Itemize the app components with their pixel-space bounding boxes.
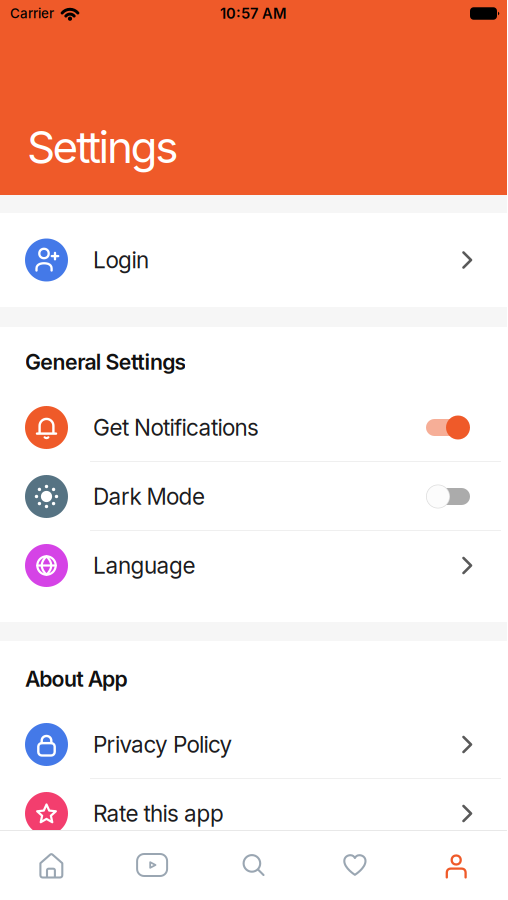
button[interactable]: Videos <box>101 851 203 879</box>
staticText: General Settings <box>25 349 186 375</box>
button[interactable]: Privacy Policy <box>0 710 507 779</box>
button[interactable]: Language <box>0 531 507 600</box>
staticText: Carrier <box>10 6 54 21</box>
staticText: Settings <box>27 121 178 173</box>
button[interactable]: Dark Mode <box>0 462 507 531</box>
button[interactable]: Search <box>203 851 304 879</box>
staticText: Dark Mode <box>93 483 205 510</box>
button[interactable]: Login <box>0 213 507 307</box>
staticText: Language <box>93 552 195 579</box>
staticText: Rate this app <box>93 800 224 827</box>
staticText: Privacy Policy <box>93 731 232 758</box>
button[interactable]: Favorites <box>304 851 406 879</box>
staticText: 10:57 AM <box>220 5 287 22</box>
staticText: About App <box>25 666 127 692</box>
staticText: Get Notifications <box>93 414 259 441</box>
button[interactable]: Home <box>0 851 101 879</box>
button[interactable]: Profile <box>406 851 507 879</box>
button[interactable]: Rate this app <box>0 779 507 848</box>
button[interactable]: Get Notifications <box>0 393 507 462</box>
staticText: Login <box>93 247 149 273</box>
